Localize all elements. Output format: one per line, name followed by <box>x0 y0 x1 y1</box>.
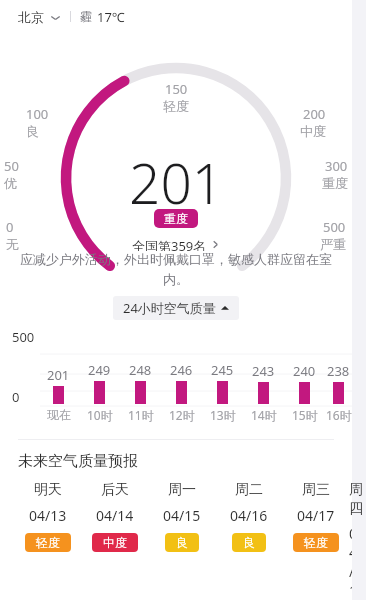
staticText: 重度 <box>164 211 188 226</box>
staticText: 200 <box>303 105 326 123</box>
button[interactable]: 201 <box>38 328 79 428</box>
staticText: 248 <box>129 361 152 379</box>
staticText: 全国第359名 <box>132 237 207 251</box>
staticText: 应减少户外活动，外出时佩戴口罩，敏感人群应留在室内。 <box>18 251 334 288</box>
button[interactable]: 24小时空气质量 <box>113 296 239 320</box>
staticText: 17℃ <box>97 8 125 26</box>
button[interactable]: 245 <box>202 328 243 428</box>
staticText: 24小时空气质量 <box>123 299 216 317</box>
button[interactable]: 243 <box>243 328 284 428</box>
staticText: 243 <box>252 362 275 380</box>
staticText: 150 <box>165 80 188 98</box>
staticText: 14时 <box>251 407 277 423</box>
staticText: 249 <box>88 361 111 379</box>
button[interactable]: 238 <box>325 328 352 428</box>
button[interactable]: 全国第359名 <box>132 237 220 251</box>
button[interactable]: 周二 <box>215 481 282 552</box>
staticText: 中度 <box>300 123 326 139</box>
staticText: 轻度 <box>163 98 189 114</box>
staticText: 245 <box>211 361 234 379</box>
staticText: 04/18 <box>349 524 352 600</box>
staticText: 重度 <box>322 175 348 191</box>
staticText: 周一 <box>168 481 196 499</box>
button[interactable]: 248 <box>120 328 161 428</box>
staticText: 周二 <box>235 481 263 499</box>
staticText: 0 <box>12 388 20 406</box>
staticText: 后天 <box>101 481 129 499</box>
staticText: 周四 <box>349 481 352 517</box>
staticText: 明天 <box>34 481 62 499</box>
staticText: 良 <box>176 535 188 550</box>
staticText: 13时 <box>210 407 236 423</box>
staticText: 中度 <box>103 535 127 550</box>
staticText: 201 <box>47 366 70 384</box>
staticText: 246 <box>170 361 193 379</box>
staticText: 轻度 <box>36 535 60 550</box>
staticText: 周三 <box>302 481 330 499</box>
staticText: 100 <box>26 105 49 123</box>
staticText: 16时 <box>326 407 352 423</box>
staticText: 轻度 <box>304 535 328 550</box>
staticText: 15时 <box>292 407 318 423</box>
staticText: 04/17 <box>297 506 335 525</box>
staticText: 无 <box>6 236 19 251</box>
staticText: 201 <box>129 145 224 220</box>
staticText: 12时 <box>169 407 195 423</box>
staticText: 04/13 <box>29 506 67 525</box>
staticText: 未来空气质量预报 <box>18 452 138 471</box>
staticText: 238 <box>327 362 350 380</box>
button[interactable]: 240 <box>284 328 325 428</box>
button[interactable]: 周一 <box>148 481 215 552</box>
staticText: 04/14 <box>96 506 134 525</box>
staticText: 11时 <box>128 407 154 423</box>
button[interactable]: 246 <box>161 328 202 428</box>
button[interactable]: 明天 <box>14 481 81 552</box>
staticText: 现在 <box>47 407 71 422</box>
staticText: 50 <box>4 157 19 175</box>
button[interactable]: 后天 <box>81 481 148 552</box>
button[interactable]: 重度 <box>154 209 198 228</box>
staticText: 良 <box>26 123 39 139</box>
staticText: 04/15 <box>163 506 201 525</box>
staticText: 240 <box>293 362 316 380</box>
button[interactable]: 周三 <box>282 481 349 552</box>
staticText: 北京 <box>18 9 44 25</box>
staticText: 500 <box>323 218 346 236</box>
staticText: 04/16 <box>230 506 268 525</box>
button[interactable]: 249 <box>79 328 120 428</box>
other: Change city <box>50 12 61 23</box>
staticText: 优 <box>4 175 17 191</box>
staticText: 0 <box>6 218 14 236</box>
button[interactable]: 北京 <box>18 5 61 29</box>
staticText: 300 <box>325 157 348 175</box>
staticText: 500 <box>12 328 35 346</box>
staticText: 良 <box>243 535 255 550</box>
button[interactable]: 周四 <box>349 481 352 600</box>
staticText: 霾 <box>80 9 92 24</box>
staticText: 10时 <box>87 407 113 423</box>
staticText: 严重 <box>320 236 346 251</box>
